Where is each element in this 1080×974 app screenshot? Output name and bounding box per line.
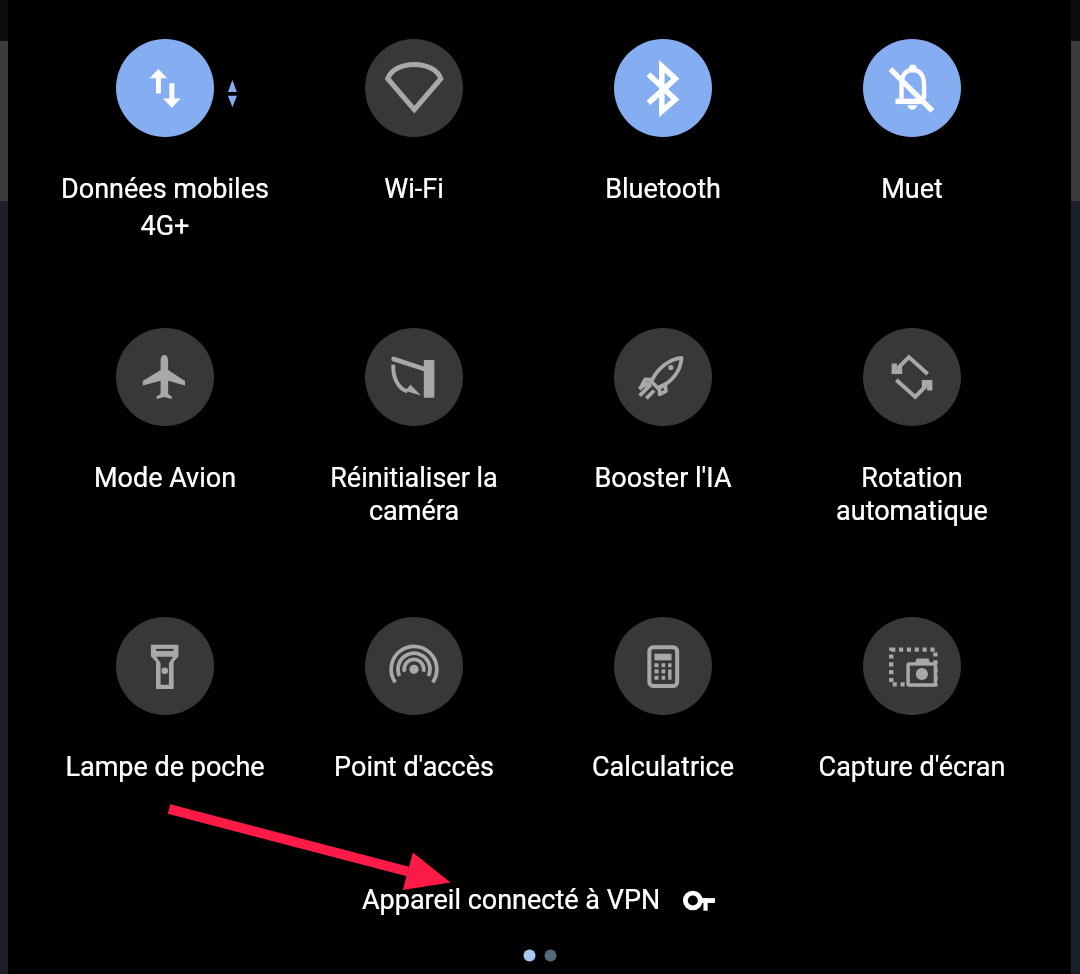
- staticText: Booster l'IA: [539, 462, 787, 494]
- staticText: Appareil connecté à VPN: [362, 884, 661, 916]
- button[interactable]: Wi-Fi: [290, 23, 538, 194]
- staticText: Mode Avion: [41, 462, 289, 494]
- button[interactable]: Reset camera: [290, 312, 538, 517]
- staticText: Réinitialiser la caméra: [290, 462, 538, 527]
- staticText: Bluetooth: [539, 173, 787, 205]
- staticText: Wi-Fi: [290, 173, 538, 205]
- staticText: Rotation automatique: [788, 462, 1036, 527]
- button[interactable]: Appareil connecté à VPN: [362, 884, 715, 916]
- staticText: Données mobiles 4G+: [41, 173, 289, 241]
- staticText: Calculatrice: [539, 751, 787, 783]
- button[interactable]: Mute: [788, 23, 1036, 194]
- button[interactable]: Hotspot: [290, 601, 538, 772]
- staticText: Muet: [788, 173, 1036, 205]
- button[interactable]: Airplane mode: [41, 312, 289, 483]
- staticText: Capture d'écran: [788, 751, 1036, 783]
- button[interactable]: Auto rotate: [788, 312, 1036, 517]
- button[interactable]: Calculator: [539, 601, 787, 772]
- staticText: Point d'accès: [290, 751, 538, 783]
- button[interactable]: Bluetooth: [539, 23, 787, 194]
- button[interactable]: Flashlight: [41, 601, 289, 772]
- staticText: Lampe de poche: [41, 751, 289, 783]
- button[interactable]: Mobile data: [41, 23, 289, 228]
- button[interactable]: AI boost: [539, 312, 787, 483]
- button[interactable]: Screenshot: [788, 601, 1036, 772]
